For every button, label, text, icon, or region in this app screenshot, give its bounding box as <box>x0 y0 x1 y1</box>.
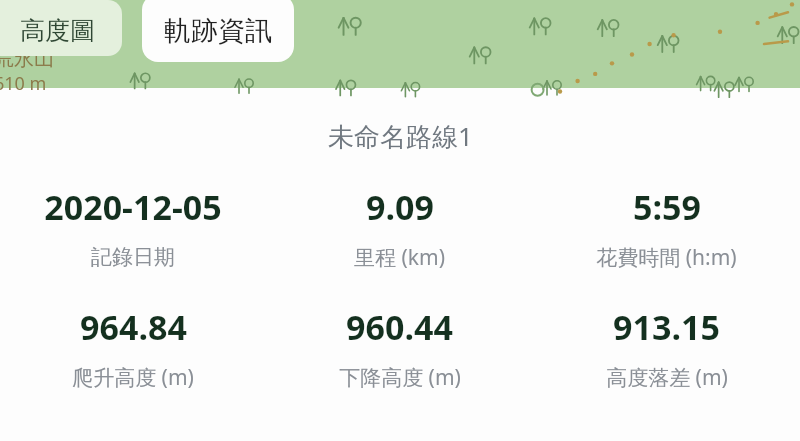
staticText: 2020-12-05 <box>44 184 222 230</box>
staticText: 里程 (km) <box>354 243 445 272</box>
staticText: 964.84 <box>80 304 187 350</box>
staticText: 高度圖 <box>20 15 95 46</box>
staticText: 913.15 <box>613 304 720 350</box>
staticText: 軌跡資訊 <box>164 14 272 48</box>
staticText: 5:59 <box>633 184 701 230</box>
staticText: 記錄日期 <box>91 244 175 270</box>
staticText: 爬升高度 (m) <box>72 363 194 392</box>
button[interactable]: 高度圖 <box>0 0 122 56</box>
staticText: 荒永山 <box>0 46 54 71</box>
staticText: 高度落差 (m) <box>606 363 728 392</box>
button[interactable]: 軌跡資訊 <box>142 0 294 62</box>
staticText: 花費時間 (h:m) <box>596 243 737 272</box>
staticText: 下降高度 (m) <box>339 363 461 392</box>
staticText: 610 m <box>0 71 47 96</box>
staticText: 未命名路線1 <box>328 118 473 154</box>
staticText: 9.09 <box>366 184 434 230</box>
staticText: 960.44 <box>346 304 453 350</box>
